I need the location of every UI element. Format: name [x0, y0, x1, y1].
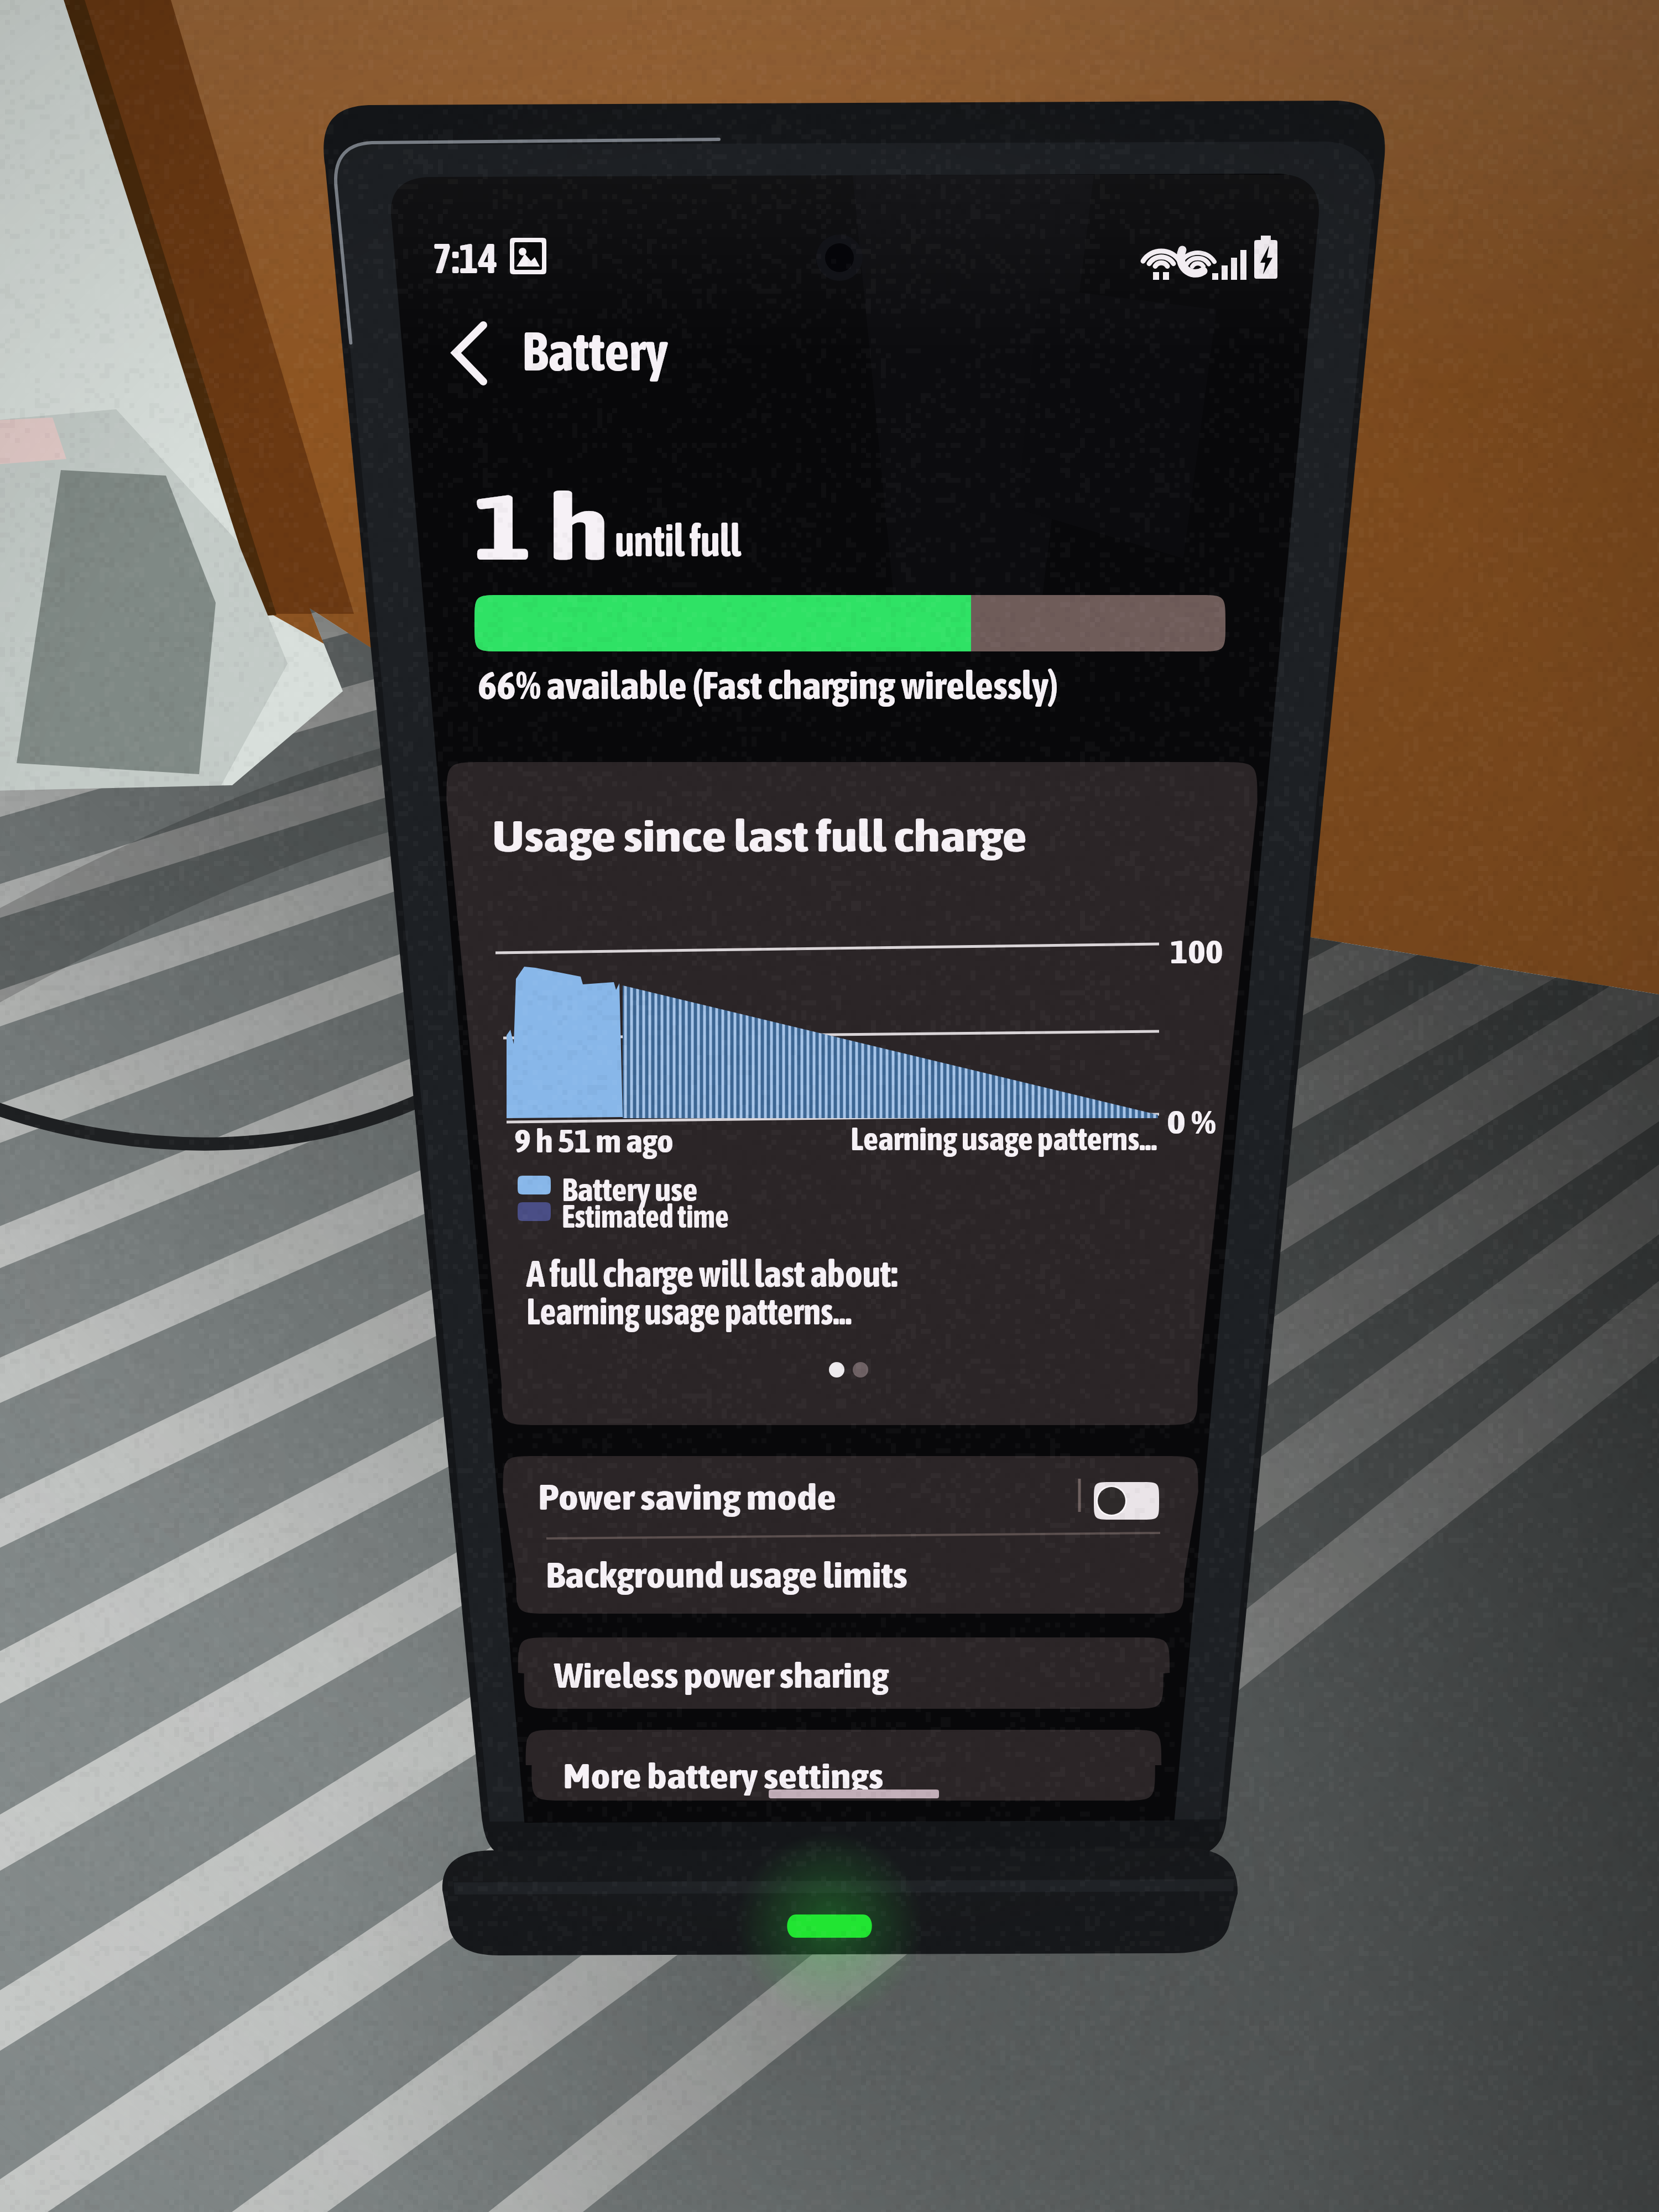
button[interactable]: Background usage limits	[510, 1537, 1184, 1614]
button[interactable]: Usage since last full charge	[447, 762, 1198, 1425]
button[interactable]: Wireless power sharing	[518, 1637, 1164, 1709]
button[interactable]: More battery settings	[526, 1730, 1155, 1801]
button[interactable]: Power saving mode	[503, 1456, 1191, 1535]
button[interactable]: Power saving mode toggle	[1084, 1475, 1164, 1528]
button[interactable]: Navigate up	[437, 310, 509, 398]
